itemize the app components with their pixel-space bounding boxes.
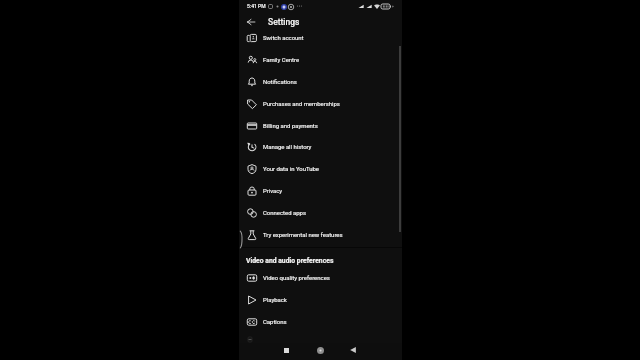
staticText: Purchases and memberships [263, 100, 340, 107]
staticText: Billing and payments [263, 122, 318, 129]
button[interactable]: Connected apps [239, 202, 402, 224]
button[interactable]: Captions [239, 311, 402, 333]
button[interactable]: Try experimental new features [239, 224, 402, 246]
staticText: Settings [268, 17, 300, 27]
staticText: Playback [263, 296, 287, 303]
button[interactable]: Back [244, 15, 258, 29]
button[interactable]: Privacy [239, 180, 402, 202]
button[interactable]: Billing and payments [239, 115, 402, 137]
button[interactable]: Manage all history [239, 136, 402, 158]
button[interactable]: Family Centre [239, 49, 402, 71]
button[interactable]: Your data in YouTube [239, 158, 402, 180]
button[interactable]: Recent apps [279, 343, 293, 357]
button[interactable]: Video quality preferences [239, 267, 402, 289]
staticText: Manage all history [263, 143, 312, 150]
button[interactable]: Back [346, 343, 360, 357]
staticText: Try experimental new features [263, 231, 343, 238]
button[interactable]: Home [313, 343, 327, 357]
button[interactable]: Notifications [239, 71, 402, 93]
staticText: Notifications [263, 78, 297, 85]
staticText: Connected apps [263, 209, 306, 216]
staticText: Video and audio preferences [246, 257, 334, 265]
staticText: Family Centre [263, 56, 300, 63]
staticText: Your data in YouTube [263, 165, 319, 172]
staticText: Video quality preferences [263, 274, 330, 281]
button[interactable]: Purchases and memberships [239, 93, 402, 115]
staticText: Privacy [263, 187, 283, 194]
staticText: Switch account [263, 34, 304, 41]
staticText: 5:41 PM [247, 3, 266, 9]
button[interactable]: Playback [239, 289, 402, 311]
staticText: Captions [263, 318, 287, 325]
button[interactable]: Switch account [239, 27, 402, 49]
